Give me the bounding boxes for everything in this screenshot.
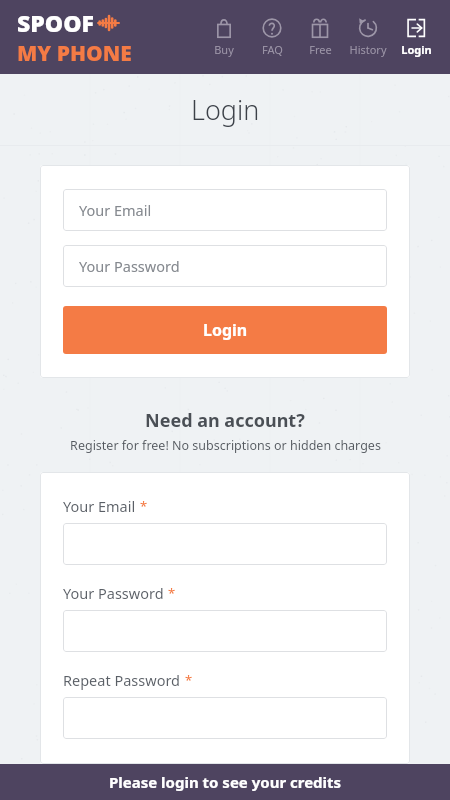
staticText: Please login to see your credits <box>109 772 342 792</box>
button[interactable] <box>63 523 387 565</box>
button[interactable] <box>63 697 387 739</box>
button[interactable]: Login <box>392 13 440 61</box>
button[interactable]: Your Password <box>63 245 387 287</box>
staticText: SPOOF <box>17 7 94 38</box>
staticText: * <box>185 671 193 689</box>
staticText: History <box>349 42 387 57</box>
staticText: Repeat Password <box>63 670 181 690</box>
button[interactable]: Your Email <box>63 189 387 231</box>
staticText: FAQ <box>262 42 283 57</box>
button[interactable]: Please login to see your credits <box>0 764 450 800</box>
staticText: Need an account? <box>145 408 305 433</box>
staticText: Login <box>191 91 260 128</box>
staticText: Your Password <box>63 583 164 603</box>
staticText: Free <box>309 42 332 57</box>
staticText: Login <box>401 42 432 57</box>
staticText: * <box>168 584 176 602</box>
button[interactable] <box>63 610 387 652</box>
staticText: Register for free! No subscriptions or h… <box>70 437 381 454</box>
button[interactable]: FAQ <box>248 13 296 61</box>
button[interactable]: Login <box>63 306 387 354</box>
staticText: Your Email <box>63 496 136 516</box>
button[interactable]: History <box>344 13 392 61</box>
staticText: MY PHONE <box>17 39 132 68</box>
button[interactable]: Buy <box>200 13 248 61</box>
staticText: * <box>140 497 148 515</box>
staticText: Buy <box>214 42 234 57</box>
staticText: Login <box>203 319 248 341</box>
button[interactable]: Free <box>296 13 344 61</box>
staticText: Your Password <box>79 256 180 276</box>
staticText: Your Email <box>79 200 152 220</box>
